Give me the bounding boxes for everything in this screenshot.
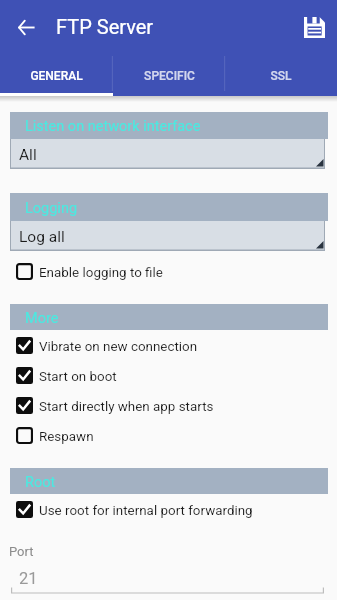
staticText: Log all bbox=[19, 228, 65, 246]
button[interactable]: SPECIFIC bbox=[113, 53, 225, 96]
button[interactable]: Save bbox=[298, 11, 330, 43]
button[interactable]: All bbox=[10, 139, 325, 169]
staticText: Logging bbox=[25, 200, 78, 217]
staticText: Respawn bbox=[39, 429, 94, 445]
staticText: Use root for internal port forwarding bbox=[39, 503, 253, 519]
staticText: Port bbox=[9, 544, 34, 559]
staticText: Listen on network interface bbox=[25, 118, 201, 135]
staticText: 21 bbox=[19, 569, 38, 588]
button[interactable]: Start on boot bbox=[0, 364, 337, 386]
staticText: Enable logging to file bbox=[39, 265, 163, 281]
button[interactable]: Root bbox=[10, 468, 328, 494]
button[interactable]: More bbox=[10, 304, 328, 330]
button[interactable]: SSL bbox=[225, 53, 337, 96]
button[interactable]: GENERAL bbox=[0, 53, 113, 96]
staticText: SSL bbox=[270, 69, 292, 83]
button[interactable]: Vibrate on new connection bbox=[0, 334, 337, 356]
staticText: All bbox=[19, 146, 37, 164]
button[interactable]: Respawn bbox=[0, 424, 337, 446]
staticText: Start directly when app starts bbox=[39, 399, 214, 415]
button[interactable]: Listen on network interface bbox=[10, 112, 328, 139]
button[interactable]: Log all bbox=[10, 221, 325, 251]
staticText: Vibrate on new connection bbox=[39, 339, 198, 355]
staticText: Root bbox=[25, 474, 56, 491]
button[interactable]: Back bbox=[10, 11, 42, 43]
button[interactable]: Logging bbox=[10, 193, 328, 221]
button[interactable]: Use root for internal port forwarding bbox=[0, 498, 337, 520]
staticText: SPECIFIC bbox=[144, 69, 195, 83]
button[interactable]: Enable logging to file bbox=[0, 260, 337, 282]
staticText: Start on boot bbox=[39, 369, 117, 385]
staticText: More bbox=[25, 310, 59, 327]
button[interactable]: Start directly when app starts bbox=[0, 394, 337, 416]
staticText: GENERAL bbox=[30, 69, 83, 83]
staticText: FTP Server bbox=[56, 15, 154, 38]
